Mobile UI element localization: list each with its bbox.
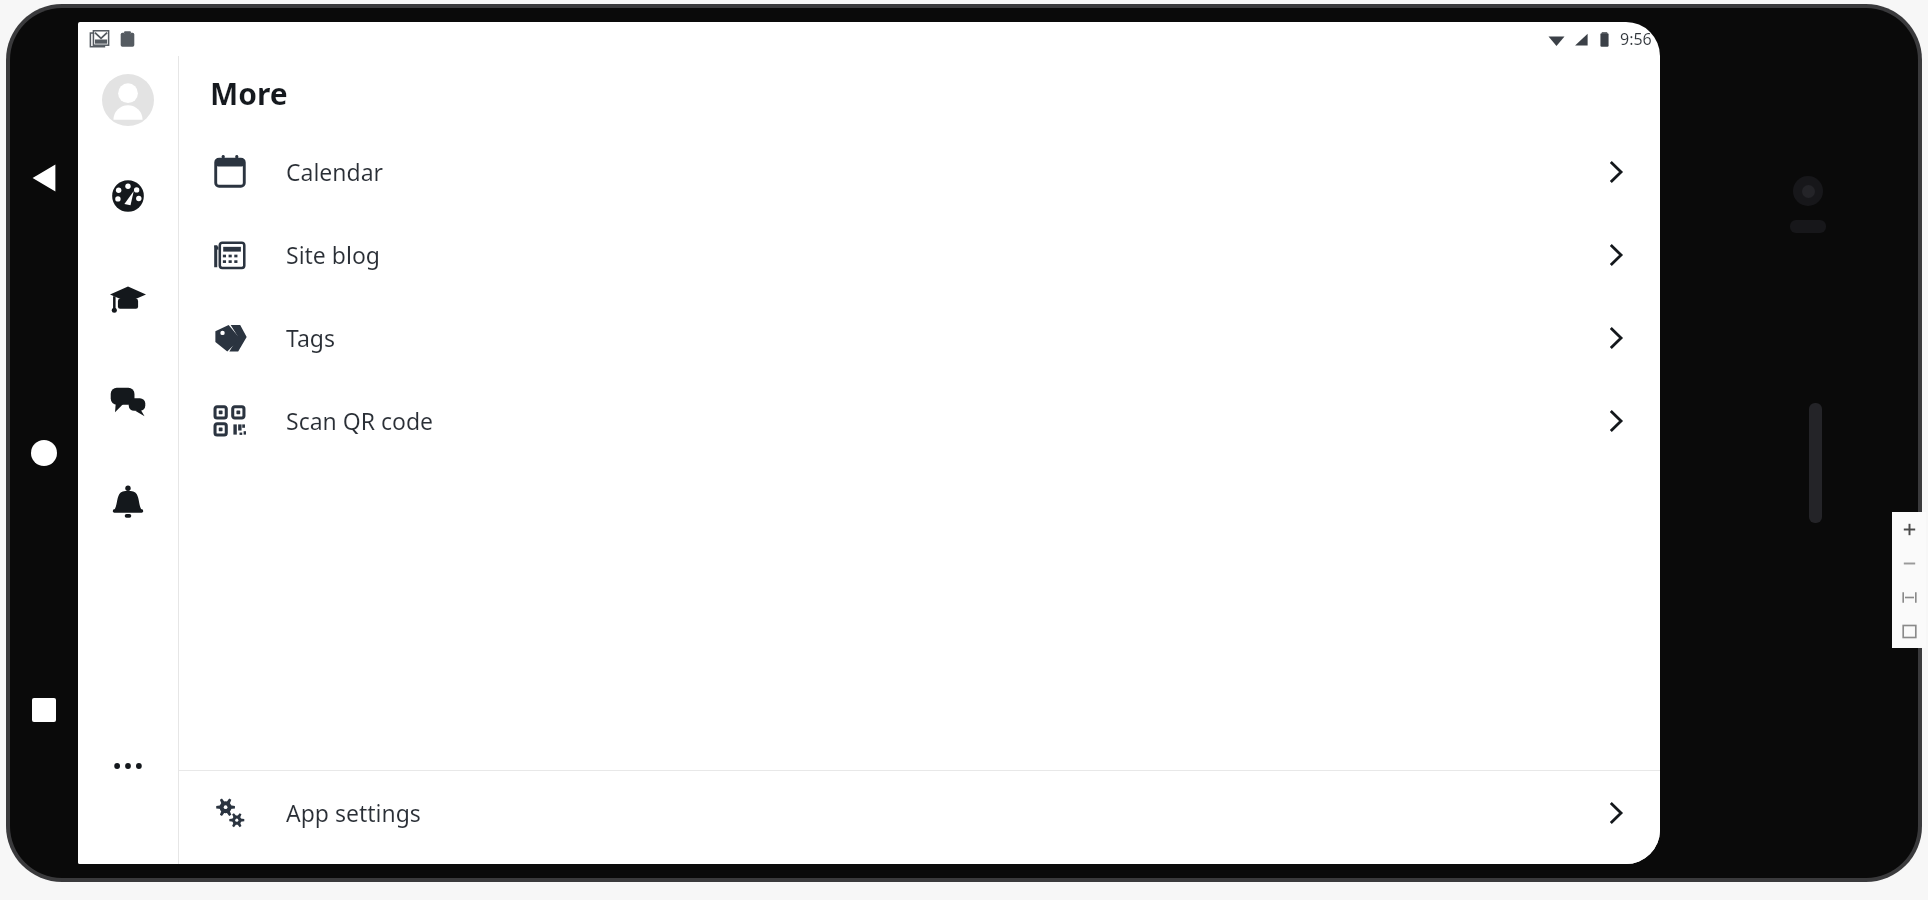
button[interactable]: Zoom in	[1892, 512, 1926, 546]
button[interactable]: Fit width	[1892, 580, 1926, 614]
button[interactable]: More	[104, 742, 152, 790]
button[interactable]: Scan QR code	[179, 379, 1660, 462]
button[interactable]: Profile	[102, 74, 154, 126]
button[interactable]: App settings	[179, 771, 1660, 854]
button[interactable]: Zoom out	[1892, 546, 1926, 580]
staticText: Scan QR code	[286, 405, 434, 436]
button[interactable]: Calendar	[179, 130, 1660, 213]
button[interactable]: Notifications	[102, 476, 154, 528]
staticText: 9:56	[1620, 28, 1652, 50]
staticText: Calendar	[286, 156, 384, 187]
button[interactable]: Fit screen	[1892, 614, 1926, 648]
button[interactable]: Home	[24, 433, 64, 473]
button[interactable]: Messages	[102, 374, 154, 426]
button[interactable]: Back	[24, 158, 64, 198]
button[interactable]: Tags	[179, 296, 1660, 379]
button[interactable]: Recent apps	[24, 690, 64, 730]
button[interactable]: Courses	[102, 272, 154, 324]
button[interactable]: Dashboard	[102, 170, 154, 222]
staticText: Site blog	[286, 239, 380, 270]
staticText: Tags	[286, 322, 336, 353]
staticText: App settings	[286, 797, 421, 828]
staticText: More	[210, 73, 288, 114]
button[interactable]: Site blog	[179, 213, 1660, 296]
